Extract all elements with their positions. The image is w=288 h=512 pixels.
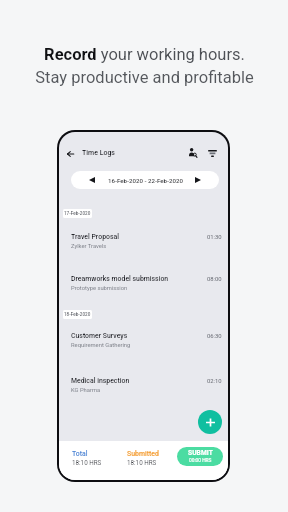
staticText: 17-Feb-2020	[64, 211, 91, 216]
staticText: 01:30	[207, 234, 222, 241]
button[interactable]: Submitted	[127, 450, 159, 466]
staticText: Time Logs	[82, 149, 115, 157]
button[interactable]: SUBMIT	[177, 447, 223, 466]
staticText: 18-Feb-2020	[64, 312, 91, 317]
button[interactable]: Travel Proposal	[59, 233, 228, 250]
staticText: Zylker Travels	[71, 243, 107, 250]
staticText: Stay productive and profitable	[35, 68, 254, 87]
staticText: Dreamworks model submission	[71, 275, 169, 283]
staticText: 06:30	[207, 333, 222, 340]
staticText: 02:10	[207, 378, 222, 385]
staticText: 00:00 HRS	[189, 458, 212, 464]
staticText: Prototype submission	[71, 285, 128, 292]
staticText: Requirement Gathering	[71, 342, 131, 349]
staticText: 18:10 HRS	[127, 459, 157, 466]
staticText: Submitted	[127, 450, 159, 458]
button[interactable]: Search people	[184, 144, 201, 161]
staticText: 18:10 HRS	[72, 459, 102, 466]
staticText: Medical inspection	[71, 377, 130, 385]
button[interactable]: Filter	[204, 145, 221, 162]
staticText: KG Pharma	[71, 387, 101, 394]
button[interactable]: Add time log	[198, 410, 222, 434]
staticText: Travel Proposal	[71, 233, 119, 241]
button[interactable]: Customer Surveys	[59, 332, 228, 349]
staticText: Record your working hours.	[44, 45, 245, 64]
staticText: Total	[72, 450, 88, 458]
button[interactable]: Medical inspection	[59, 377, 228, 394]
staticText: Customer Surveys	[71, 332, 128, 340]
button[interactable]: Back	[62, 145, 79, 162]
staticText: 16-Feb-2020 - 22-Feb-2020	[108, 177, 183, 184]
button[interactable]: 16-Feb-2020 - 22-Feb-2020	[71, 171, 219, 189]
button[interactable]: Total	[72, 450, 102, 466]
button[interactable]: Dreamworks model submission	[59, 275, 228, 292]
staticText: SUBMIT	[188, 449, 213, 457]
staticText: 08:00	[207, 276, 222, 283]
